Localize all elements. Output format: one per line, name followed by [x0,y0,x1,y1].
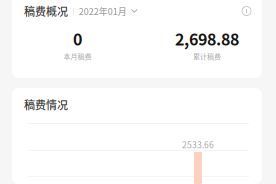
staticText: 2022年01月 [79,4,127,17]
staticText: 稿费概况 [24,3,68,19]
staticText: 本月稿费 [63,51,91,61]
button[interactable]: 2022年01月 [79,4,138,17]
staticText: 2533.66 [182,138,214,151]
staticText: 累计稿费 [193,51,221,61]
staticText: 2,698.88 [175,27,239,50]
staticText: 稿费情况 [24,96,68,112]
staticText: 0 [73,27,82,50]
button[interactable]: Info [238,3,254,19]
